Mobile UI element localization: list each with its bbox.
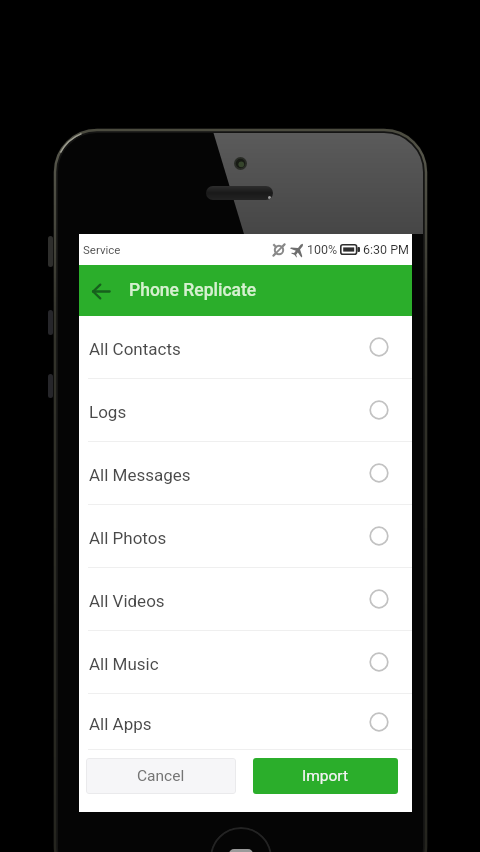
staticText: All Contacts bbox=[89, 339, 181, 359]
staticText: Cancel bbox=[137, 767, 185, 785]
button[interactable]: All Videos bbox=[79, 568, 412, 631]
button[interactable]: All Apps bbox=[79, 694, 412, 750]
staticText: All Videos bbox=[89, 591, 165, 611]
staticText: All Messages bbox=[89, 465, 191, 485]
button[interactable]: Cancel bbox=[86, 758, 236, 794]
staticText: Service bbox=[83, 243, 121, 256]
button[interactable]: All Contacts bbox=[79, 316, 412, 379]
staticText: Phone Replicate bbox=[129, 280, 257, 301]
staticText: Import bbox=[302, 767, 349, 785]
button[interactable]: Import bbox=[253, 758, 398, 794]
staticText: All Music bbox=[89, 654, 159, 674]
staticText: All Photos bbox=[89, 528, 167, 548]
button[interactable]: Back bbox=[84, 274, 118, 308]
button[interactable]: Logs bbox=[79, 379, 412, 442]
staticText: Logs bbox=[89, 402, 127, 422]
staticText: 100% bbox=[307, 242, 338, 257]
staticText: 6:30 PM bbox=[363, 242, 410, 257]
staticText: All Apps bbox=[89, 714, 152, 734]
button[interactable]: All Photos bbox=[79, 505, 412, 568]
button[interactable]: All Messages bbox=[79, 442, 412, 505]
button[interactable]: All Music bbox=[79, 631, 412, 694]
